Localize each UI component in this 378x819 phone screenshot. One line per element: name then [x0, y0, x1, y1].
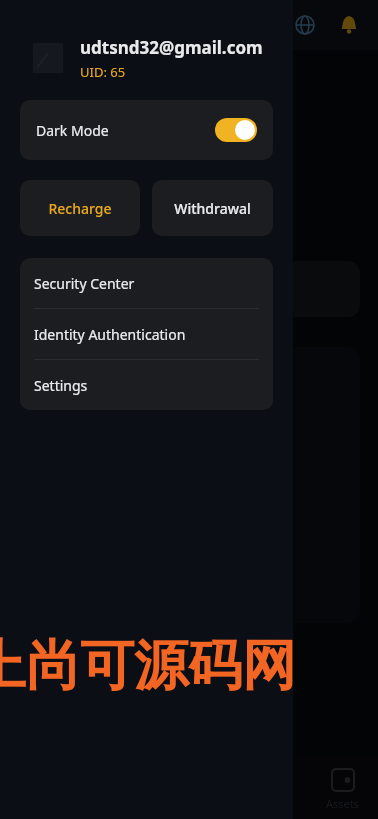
staticText: Dark Mode — [36, 121, 109, 140]
staticText: Assets — [326, 796, 360, 811]
staticText: Platform — [18, 160, 168, 206]
staticText: udtsnd32@gmail.com — [80, 36, 263, 59]
button[interactable]: Notifications — [332, 8, 366, 42]
button[interactable]: Dark Mode — [20, 100, 273, 160]
button[interactable] — [18, 261, 360, 317]
staticText: Recharge — [48, 199, 112, 218]
button[interactable]: udtsnd32@gmail.com — [20, 30, 277, 86]
other: Dark mode toggle — [215, 118, 257, 142]
button[interactable]: Assets — [308, 761, 378, 819]
staticText: We provide you with — [18, 216, 152, 235]
staticText: Identity Authentication — [34, 325, 186, 344]
button[interactable]: Withdrawal — [152, 180, 273, 236]
button[interactable]: Language — [288, 8, 322, 42]
staticText: Security Center — [34, 274, 135, 293]
button[interactable]: Recharge — [20, 180, 140, 236]
button[interactable]: Settings — [20, 360, 273, 410]
button[interactable]: Security Center — [20, 258, 273, 308]
button[interactable]: Identity Authentication — [20, 309, 273, 359]
staticText: Trading — [18, 90, 147, 136]
staticText: 上尚可源码网 — [0, 632, 296, 700]
staticText: Settings — [34, 376, 88, 395]
staticText: Withdrawal — [174, 199, 251, 218]
staticText: UID: 65 — [80, 63, 126, 81]
